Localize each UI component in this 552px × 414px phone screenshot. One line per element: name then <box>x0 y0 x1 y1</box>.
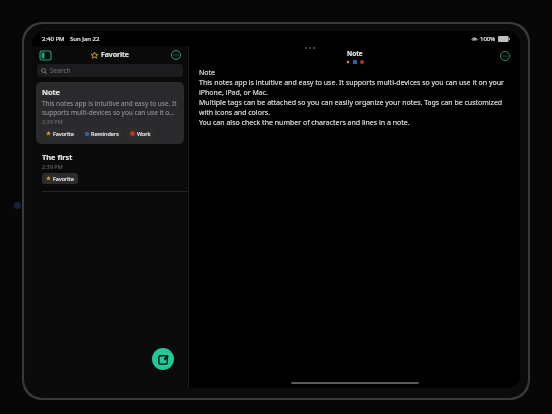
staticText: Note <box>42 87 61 97</box>
button[interactable]: Reminders <box>81 128 123 139</box>
button[interactable]: Note <box>346 49 364 64</box>
staticText: Sun Jan 22 <box>70 35 100 43</box>
button[interactable]: More options <box>169 48 183 62</box>
staticText: Note <box>347 49 363 58</box>
staticText: Search <box>50 66 71 75</box>
staticText: You can also check the number of charact… <box>199 118 410 128</box>
staticText: Multiple tags can be attached so you can… <box>199 98 510 118</box>
button[interactable]: Favorite <box>91 50 129 60</box>
staticText: Note <box>199 68 216 78</box>
button[interactable]: Note <box>36 82 184 144</box>
button[interactable]: Note options <box>498 49 512 63</box>
button[interactable]: Toggle sidebar <box>37 47 53 63</box>
staticText: This notes app is intuitive and easy to … <box>199 78 510 98</box>
staticText: Work <box>137 130 151 137</box>
staticText: 2:39 PM <box>42 118 63 125</box>
staticText: Favorite <box>53 175 74 182</box>
staticText: 100% <box>480 35 496 43</box>
staticText: 2:39 PM <box>42 163 63 170</box>
button[interactable]: Work <box>126 128 155 139</box>
button[interactable]: The first <box>32 150 188 186</box>
staticText: Favorite <box>53 130 74 137</box>
button[interactable]: Favorite <box>42 173 78 184</box>
button[interactable]: Compose new note <box>152 348 174 370</box>
staticText: Reminders <box>91 130 119 137</box>
button[interactable]: Search <box>37 64 183 77</box>
staticText: 2:40 PM <box>42 35 65 43</box>
button[interactable]: Favorite <box>42 128 78 139</box>
staticText: This notes app is intuitive and easy to … <box>42 99 178 117</box>
staticText: Favorite <box>101 50 129 60</box>
staticText: The first <box>42 152 73 162</box>
